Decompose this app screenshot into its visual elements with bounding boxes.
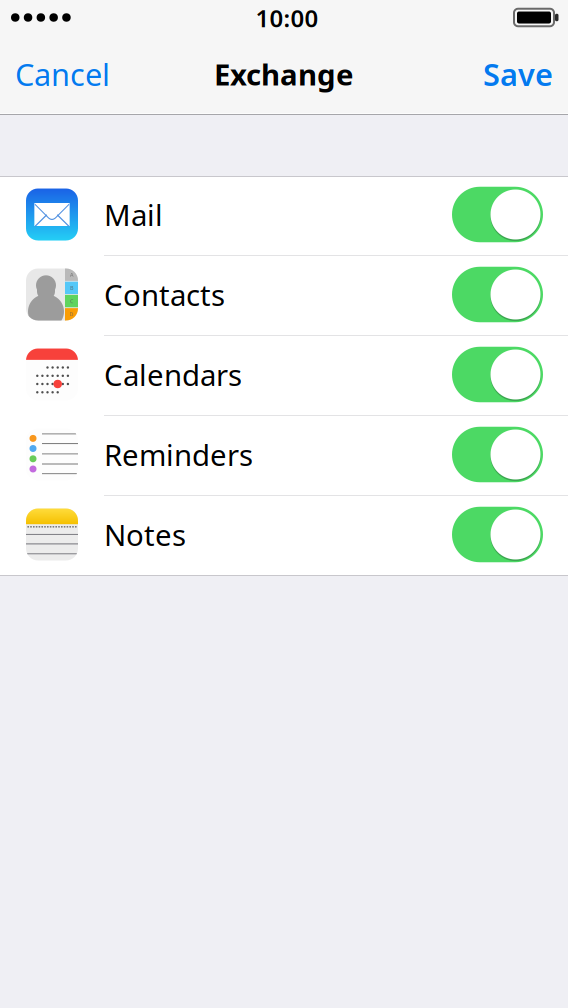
staticText: Contacts	[104, 275, 225, 314]
staticText: B	[70, 284, 73, 291]
staticText: Exchange	[214, 54, 354, 93]
button[interactable]: A	[0, 256, 568, 336]
button[interactable]: Save	[469, 37, 568, 114]
button[interactable]: Mail	[0, 176, 568, 256]
staticText: Mail	[104, 195, 163, 234]
staticText: D	[69, 311, 73, 318]
staticText: Calendars	[104, 355, 242, 394]
button[interactable]: Reminders	[0, 416, 568, 496]
staticText: C	[70, 298, 73, 305]
staticText: 10:00	[255, 2, 318, 34]
staticText: A	[70, 271, 73, 278]
staticText: Reminders	[104, 435, 253, 474]
staticText: Notes	[104, 515, 186, 554]
button[interactable]: Calendars	[0, 336, 568, 416]
staticText: Cancel	[15, 54, 110, 94]
staticText: Save	[483, 54, 553, 94]
button[interactable]: Cancel	[0, 37, 124, 114]
button[interactable]: Notes	[0, 496, 568, 576]
